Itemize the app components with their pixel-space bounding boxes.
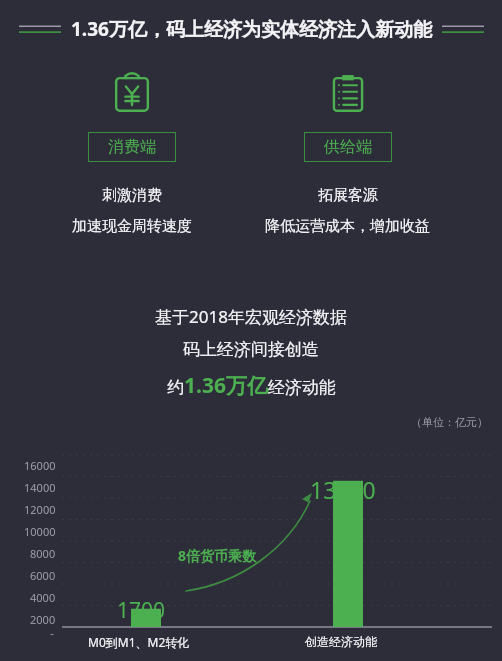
- staticText: 8000: [30, 546, 56, 561]
- staticText: 1700: [117, 596, 166, 625]
- other: 消费端: [110, 72, 154, 116]
- staticText: 0: [49, 630, 56, 635]
- staticText: 码上经济间接创造: [183, 339, 319, 360]
- button[interactable]: 供给端: [304, 132, 392, 162]
- other: 供给端: [326, 72, 370, 116]
- staticText: 约1.36万亿经济动能: [167, 371, 336, 400]
- staticText: 消费端: [108, 137, 156, 157]
- button[interactable]: 消费端: [88, 132, 176, 162]
- staticText: 4000: [30, 590, 56, 605]
- staticText: 14000: [24, 480, 56, 495]
- staticText: 8倍货币乘数: [178, 546, 257, 565]
- staticText: 供给端: [324, 137, 372, 157]
- staticText: 13600: [310, 474, 376, 505]
- staticText: 降低运营成本，增加收益: [265, 217, 430, 236]
- staticText: 基于2018年宏观经济数据: [155, 305, 347, 328]
- staticText: M0到M1、M2转化: [88, 634, 190, 650]
- staticText: 6000: [30, 568, 56, 583]
- staticText: 拓展客源: [318, 186, 378, 205]
- staticText: 2000: [30, 612, 56, 627]
- staticText: 加速现金周转速度: [72, 217, 192, 236]
- staticText: 刺激消费: [102, 186, 162, 205]
- staticText: 10000: [24, 524, 56, 539]
- staticText: 1.36万亿，码上经济为实体经济注入新动能: [71, 16, 432, 42]
- staticText: 16000: [24, 458, 56, 473]
- staticText: 12000: [24, 502, 56, 517]
- staticText: 创造经济动能: [305, 634, 377, 649]
- staticText: （单位：亿元）: [411, 415, 488, 429]
